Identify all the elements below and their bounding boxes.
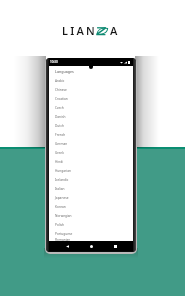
staticText: Korean	[55, 205, 66, 209]
button[interactable]: Hungarian	[49, 166, 133, 175]
button[interactable]: Portuguese	[49, 229, 133, 238]
button[interactable]: Danish	[49, 112, 133, 121]
button[interactable]: Polish	[49, 220, 133, 229]
button[interactable]: Arabic	[49, 76, 133, 85]
staticText: LIAN	[62, 23, 97, 38]
button[interactable]: Korean	[49, 202, 133, 211]
staticText: Italian	[55, 187, 65, 191]
button[interactable]: Dutch	[49, 121, 133, 130]
staticText: Czech	[55, 106, 64, 110]
button[interactable]: Hindi	[49, 157, 133, 166]
staticText: Japanese	[55, 196, 69, 200]
button[interactable]: German	[49, 139, 133, 148]
staticText: Greek	[55, 151, 64, 155]
staticText: Norwegian	[55, 214, 72, 218]
staticText: Romanian	[55, 238, 71, 241]
staticText: Portuguese	[55, 232, 73, 236]
button[interactable]: Croatian	[49, 94, 133, 103]
staticText: Chinese	[55, 88, 67, 92]
staticText: Icelandic	[55, 178, 69, 182]
button[interactable]: Italian	[49, 184, 133, 193]
staticText: Languages	[55, 69, 74, 74]
staticText: Hindi	[55, 160, 63, 164]
staticText: 10:30	[50, 60, 58, 64]
button[interactable]: Back	[61, 241, 73, 251]
button[interactable]: Home	[85, 241, 97, 251]
staticText: Dutch	[55, 124, 64, 128]
button[interactable]: Greek	[49, 148, 133, 157]
staticText: Danish	[55, 115, 66, 119]
button[interactable]: Icelandic	[49, 175, 133, 184]
staticText: A	[110, 23, 120, 38]
button[interactable]: Norwegian	[49, 211, 133, 220]
staticText: German	[55, 142, 68, 146]
button[interactable]: Romanian	[49, 238, 133, 241]
staticText: French	[55, 133, 66, 137]
staticText: Arabic	[55, 79, 65, 83]
button[interactable]: Czech	[49, 103, 133, 112]
staticText: Hungarian	[55, 169, 71, 173]
staticText: Polish	[55, 223, 64, 227]
staticText: Croatian	[55, 97, 68, 101]
button[interactable]: French	[49, 130, 133, 139]
button[interactable]: Chinese	[49, 85, 133, 94]
button[interactable]: Recent apps	[109, 241, 121, 251]
button[interactable]: Japanese	[49, 193, 133, 202]
